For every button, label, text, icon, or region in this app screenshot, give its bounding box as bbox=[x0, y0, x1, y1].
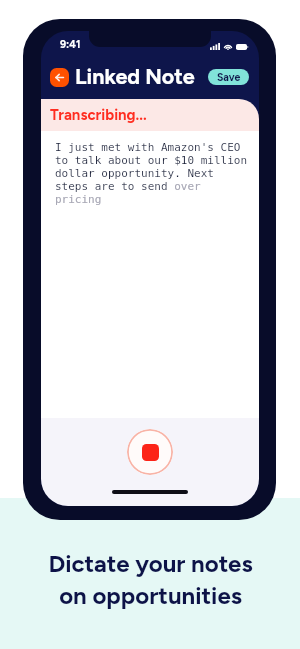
button[interactable]: Stop recording bbox=[127, 429, 173, 475]
staticText: I just met with Amazon's CEO to talk abo… bbox=[55, 141, 252, 206]
staticText: on opportunities bbox=[59, 581, 242, 610]
staticText: Save bbox=[217, 71, 241, 84]
button[interactable]: Back bbox=[50, 68, 69, 87]
staticText: Linked Note bbox=[75, 64, 195, 90]
staticText: Dictate your notes bbox=[48, 549, 253, 578]
button[interactable]: Save bbox=[208, 69, 249, 85]
staticText: Transcribing... bbox=[50, 106, 147, 124]
staticText: 9:41 bbox=[60, 38, 81, 51]
